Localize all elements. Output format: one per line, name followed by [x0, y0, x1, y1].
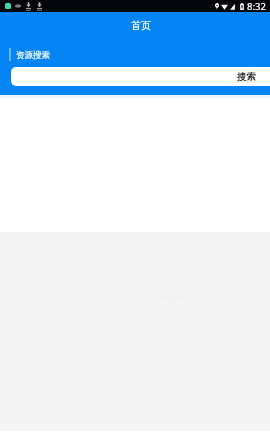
staticText: 搜索 — [237, 71, 256, 83]
staticText: 资源搜索 — [16, 50, 50, 61]
button[interactable]: 搜索 — [231, 67, 270, 86]
staticText: 8:32 — [247, 0, 266, 12]
other: Wi-Fi — [221, 3, 228, 10]
other: Mobile signal — [230, 3, 235, 10]
other: Download — [26, 2, 31, 11]
staticText: 首页 — [131, 19, 151, 32]
other: Download — [37, 2, 42, 11]
other: Notification — [15, 3, 21, 9]
other: Battery — [240, 3, 244, 10]
other: Location — [215, 3, 219, 10]
button[interactable]: 搜索输入框 — [11, 67, 231, 86]
other: App notification — [5, 3, 11, 9]
